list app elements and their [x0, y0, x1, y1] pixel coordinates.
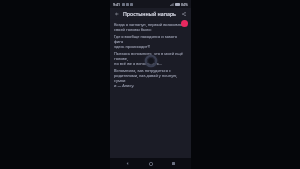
button[interactable]: Record: [181, 20, 188, 27]
staticText: Когда я заглянул, первый возможно своей …: [114, 22, 187, 32]
button[interactable]: Back: [113, 10, 121, 18]
button[interactable]: Home: [145, 158, 156, 169]
staticText: Пытаясь вспомнить, что в моей ещё голове…: [114, 51, 187, 66]
staticText: Простынный напарь: [123, 10, 180, 17]
staticText: Вспомнила, как потрудиться с родителями,…: [114, 68, 187, 88]
staticText: Где я вообще находился и какого фига зде…: [114, 34, 187, 49]
button[interactable]: Recent apps: [168, 158, 179, 169]
staticText: 9:41: [113, 2, 120, 7]
button[interactable]: Share: [180, 10, 188, 18]
button[interactable]: Back: [122, 158, 133, 169]
staticText: 84%: [181, 2, 188, 7]
